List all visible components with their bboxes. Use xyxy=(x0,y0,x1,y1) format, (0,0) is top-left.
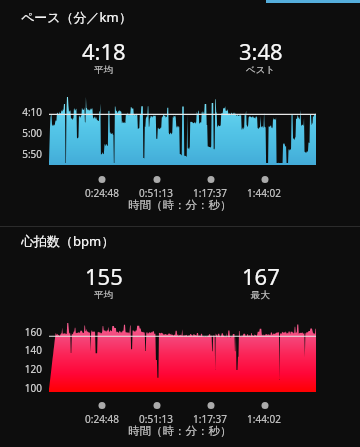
staticText: ベスト xyxy=(246,64,276,76)
staticText: 4:18 xyxy=(82,36,126,66)
staticText: 心拍数（bpm） xyxy=(21,232,115,250)
staticText: 平均 xyxy=(94,289,113,301)
staticText: 1:44:02 xyxy=(237,186,291,200)
staticText: 5:00 xyxy=(0,126,42,140)
staticText: 平均 xyxy=(94,64,113,76)
staticText: 時間（時：分：秒） xyxy=(128,198,232,212)
staticText: 0:24:48 xyxy=(75,186,129,200)
staticText: 160 xyxy=(0,325,42,339)
staticText: 0:51:13 xyxy=(129,412,183,426)
staticText: 時間（時：分：秒） xyxy=(128,424,232,438)
staticText: 1:44:02 xyxy=(237,412,291,426)
staticText: 1:17:37 xyxy=(183,186,237,200)
staticText: 0:51:13 xyxy=(129,186,183,200)
staticText: 1:17:37 xyxy=(183,412,237,426)
staticText: 4:10 xyxy=(0,105,42,119)
staticText: 140 xyxy=(0,343,42,357)
staticText: 155 xyxy=(85,261,123,291)
staticText: ペース（分／km） xyxy=(21,8,132,26)
staticText: 3:48 xyxy=(239,36,283,66)
staticText: 100 xyxy=(0,381,42,395)
staticText: 120 xyxy=(0,362,42,376)
staticText: 最大 xyxy=(251,289,270,301)
staticText: 0:24:48 xyxy=(75,412,129,426)
staticText: 5:50 xyxy=(0,147,42,161)
staticText: 167 xyxy=(242,261,280,291)
